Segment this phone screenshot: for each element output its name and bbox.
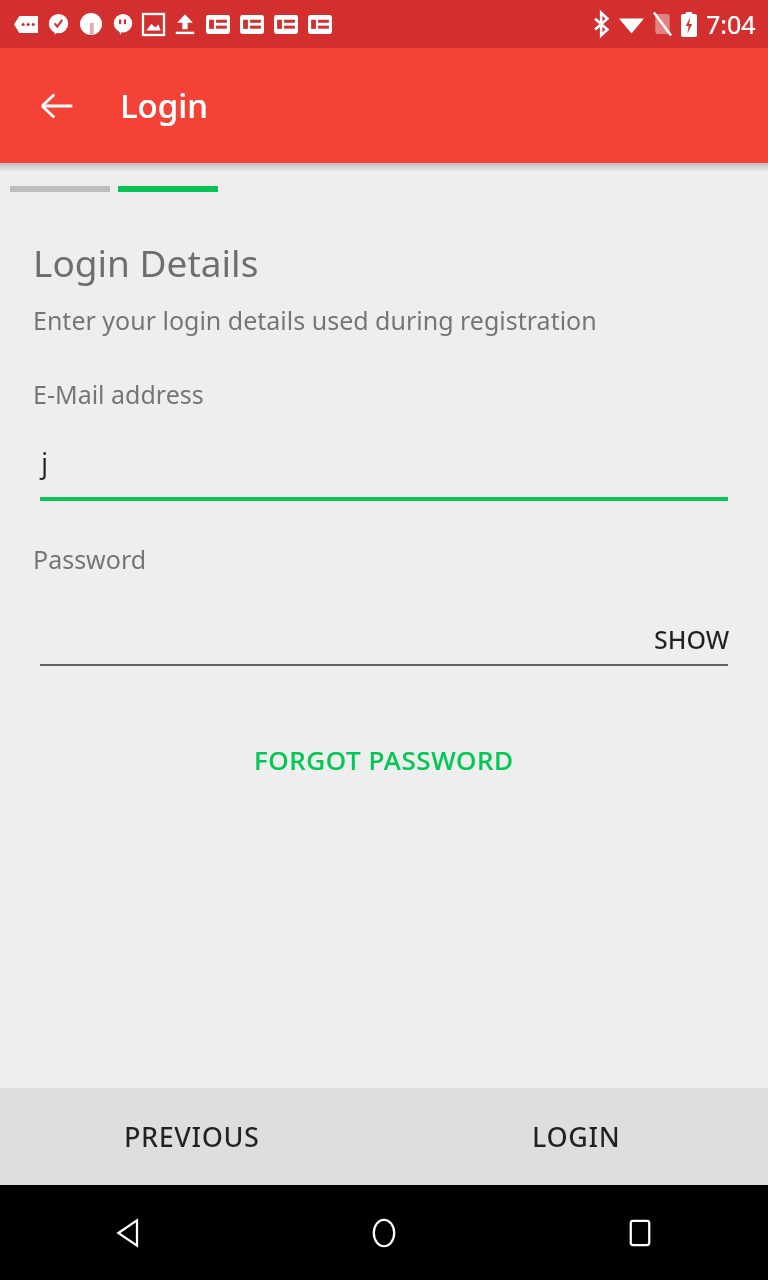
staticText: LOGIN: [532, 1118, 621, 1155]
button[interactable]: Recents: [512, 1185, 768, 1280]
button[interactable]: FORGOT PASSWORD: [240, 736, 528, 783]
button[interactable]: PREVIOUS: [0, 1088, 384, 1185]
staticText: SHOW: [654, 622, 730, 656]
staticText: Login: [120, 83, 208, 128]
button[interactable]: SHOW: [654, 622, 730, 656]
button[interactable]: Home: [256, 1185, 512, 1280]
button[interactable]: LOGIN: [384, 1088, 768, 1185]
button[interactable]: j: [0, 411, 768, 501]
button[interactable]: Back: [25, 74, 89, 138]
staticText: Enter your login details used during reg…: [33, 303, 597, 337]
staticText: PREVIOUS: [124, 1118, 260, 1155]
staticText: j: [41, 443, 49, 481]
button[interactable]: Back: [0, 1185, 256, 1280]
staticText: FORGOT PASSWORD: [254, 742, 514, 777]
staticText: Password: [33, 542, 147, 576]
staticText: 7:04: [706, 7, 756, 41]
staticText: E-Mail address: [33, 377, 204, 411]
staticText: Login Details: [33, 237, 259, 287]
